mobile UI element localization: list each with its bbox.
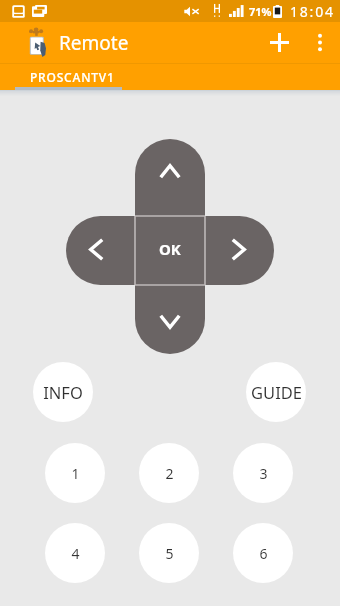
staticText: 4 xyxy=(71,544,80,563)
button[interactable]: INFO xyxy=(33,362,93,422)
button[interactable]: 1 xyxy=(45,443,105,503)
staticText: PROSCANTV1 xyxy=(30,69,115,85)
staticText: 2 xyxy=(165,464,174,483)
button[interactable]: Up xyxy=(135,139,205,216)
button[interactable]: OK xyxy=(135,216,205,285)
button[interactable]: 3 xyxy=(233,443,293,503)
button[interactable]: Left xyxy=(66,216,135,285)
staticText: Remote xyxy=(59,30,129,56)
button[interactable]: Right xyxy=(205,216,274,285)
staticText: 6 xyxy=(259,544,268,563)
staticText: 5 xyxy=(165,544,174,563)
staticText: 71% xyxy=(249,4,272,19)
button[interactable]: PROSCANTV1 xyxy=(19,63,126,90)
button[interactable]: GUIDE xyxy=(246,362,306,422)
button[interactable]: 5 xyxy=(139,523,199,583)
button[interactable]: Add xyxy=(257,22,301,63)
staticText: 3 xyxy=(259,464,268,483)
button[interactable]: More options xyxy=(301,22,339,63)
staticText: 1 xyxy=(71,464,80,483)
staticText: GUIDE xyxy=(251,381,302,403)
button[interactable]: 2 xyxy=(139,443,199,503)
staticText: OK xyxy=(159,239,181,259)
button[interactable]: 4 xyxy=(45,523,105,583)
button[interactable]: Down xyxy=(135,285,205,354)
staticText: 18:04 xyxy=(290,2,335,21)
staticText: INFO xyxy=(43,381,83,403)
button[interactable]: 6 xyxy=(233,523,293,583)
